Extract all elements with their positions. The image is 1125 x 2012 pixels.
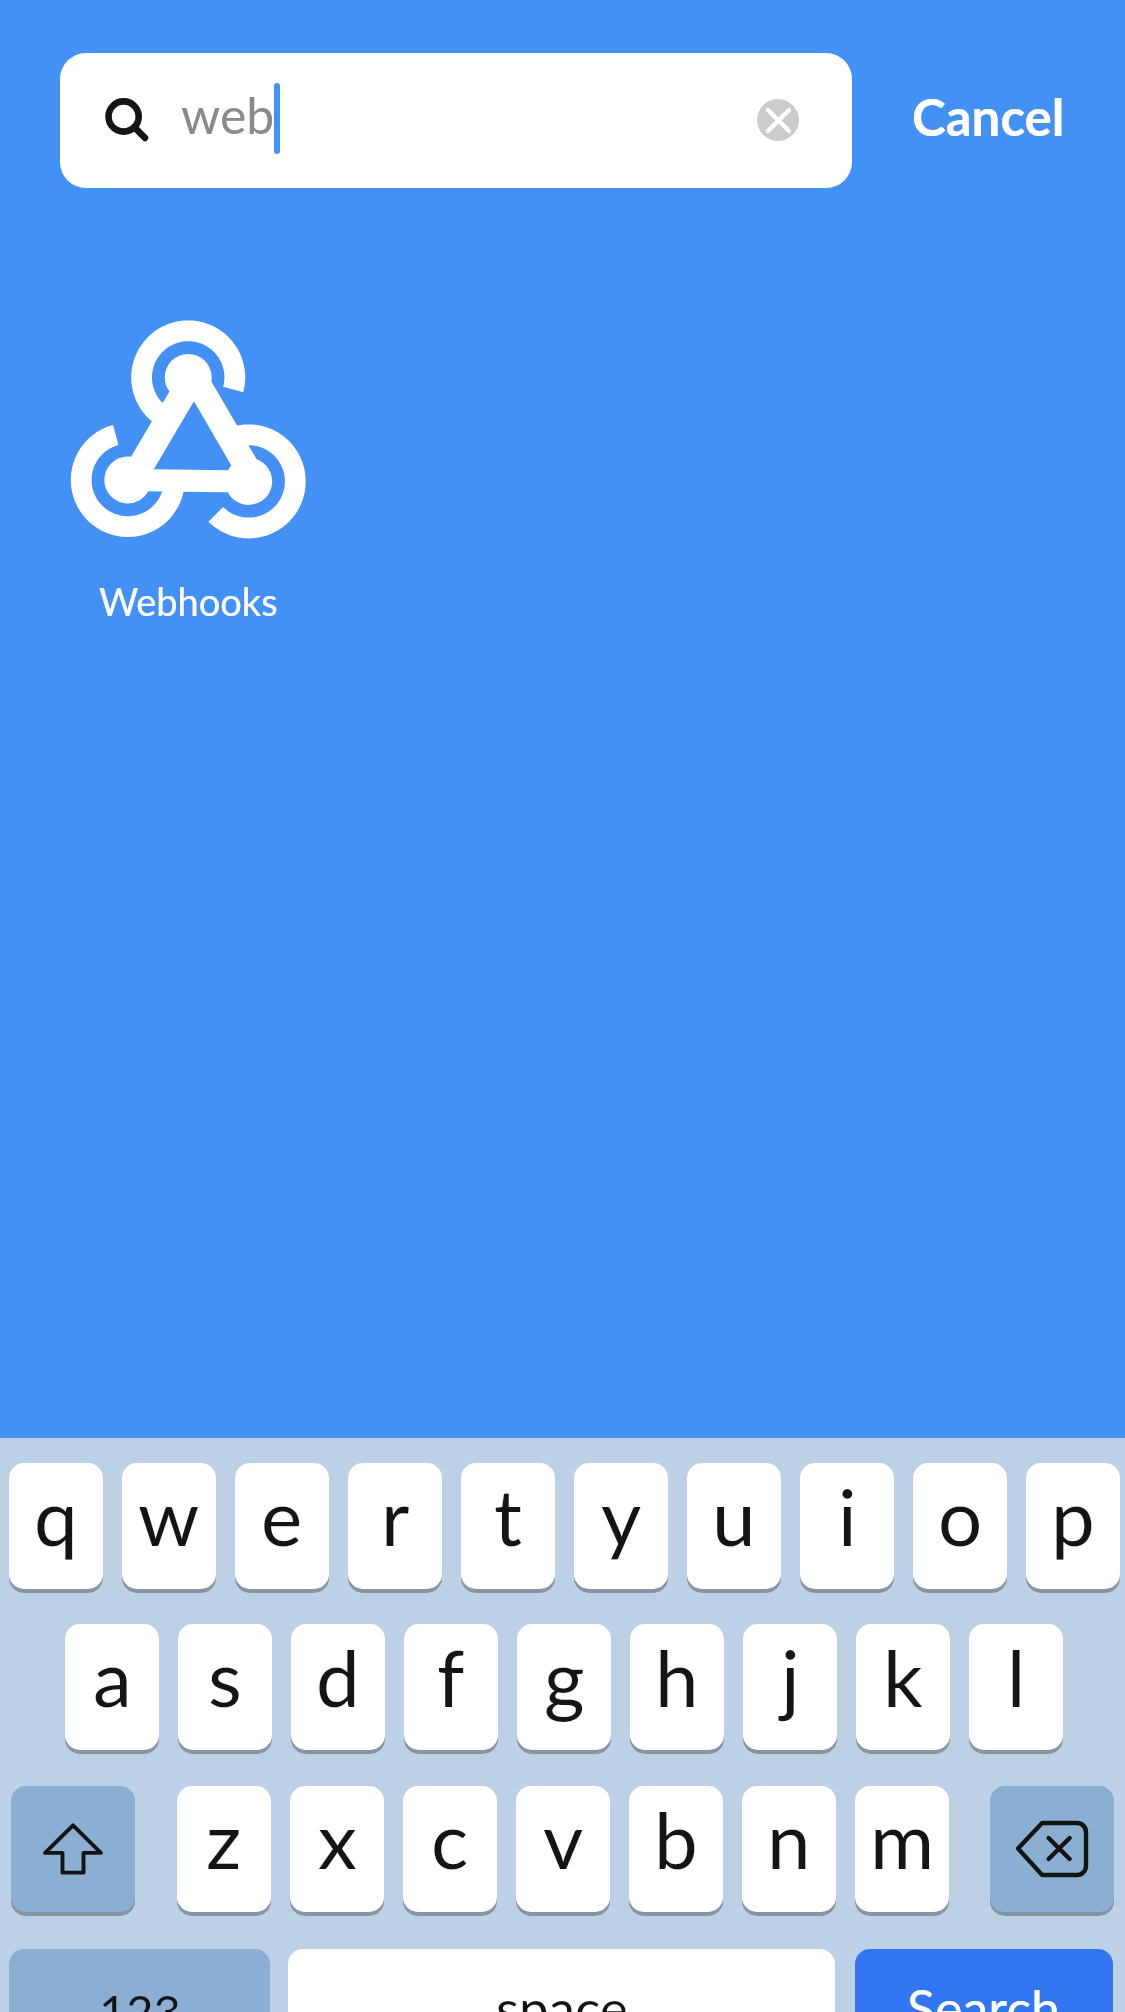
staticText: d <box>316 1630 360 1724</box>
button[interactable]: m <box>855 1786 949 1912</box>
button[interactable]: l <box>969 1624 1063 1750</box>
button[interactable]: web <box>60 53 852 188</box>
button[interactable]: Cancel <box>881 53 1096 188</box>
button[interactable]: e <box>235 1463 329 1589</box>
staticText: r <box>381 1469 410 1563</box>
staticText: b <box>654 1792 698 1886</box>
staticText: o <box>938 1469 983 1563</box>
staticText: j <box>781 1630 800 1724</box>
staticText: q <box>34 1469 78 1563</box>
button[interactable]: y <box>574 1463 668 1589</box>
button[interactable]: x <box>290 1786 384 1912</box>
button[interactable]: r <box>348 1463 442 1589</box>
button[interactable]: k <box>856 1624 950 1750</box>
button[interactable]: b <box>629 1786 723 1912</box>
staticText: g <box>544 1630 585 1724</box>
staticText: a <box>93 1630 132 1724</box>
staticText: Search <box>907 1977 1061 2012</box>
button[interactable]: c <box>403 1786 497 1912</box>
staticText: z <box>206 1792 242 1886</box>
button[interactable]: w <box>122 1463 216 1589</box>
button[interactable]: t <box>461 1463 555 1589</box>
button[interactable]: h <box>630 1624 724 1750</box>
button[interactable]: i <box>800 1463 894 1589</box>
button[interactable]: n <box>742 1786 836 1912</box>
staticText: p <box>1051 1469 1095 1563</box>
staticText: Cancel <box>912 86 1065 147</box>
button[interactable]: s <box>178 1624 272 1750</box>
staticText: c <box>431 1792 469 1886</box>
button[interactable]: q <box>9 1463 103 1589</box>
button[interactable]: space <box>288 1949 835 2012</box>
button[interactable]: g <box>517 1624 611 1750</box>
button[interactable]: z <box>177 1786 271 1912</box>
staticText: s <box>208 1630 242 1724</box>
staticText: f <box>437 1630 465 1724</box>
staticText: y <box>601 1469 642 1563</box>
staticText: w <box>138 1469 200 1563</box>
staticText: v <box>543 1792 584 1886</box>
staticText: i <box>838 1469 857 1563</box>
button[interactable]: Search <box>855 1949 1113 2012</box>
button[interactable]: Backspace <box>990 1786 1114 1912</box>
button[interactable]: Shift <box>11 1786 135 1912</box>
staticText: h <box>655 1630 699 1724</box>
staticText: x <box>318 1792 357 1886</box>
button[interactable]: v <box>516 1786 610 1912</box>
button[interactable]: f <box>404 1624 498 1750</box>
staticText: web <box>181 85 275 145</box>
button[interactable]: u <box>687 1463 781 1589</box>
staticText: Webhooks <box>99 578 278 624</box>
staticText: n <box>767 1792 811 1886</box>
button[interactable]: Clear search <box>757 99 799 141</box>
staticText: t <box>494 1469 522 1563</box>
button[interactable]: o <box>913 1463 1007 1589</box>
button[interactable]: Numbers <box>9 1949 270 2012</box>
staticText: m <box>870 1792 935 1886</box>
staticText: u <box>712 1469 756 1563</box>
staticText: k <box>883 1630 923 1724</box>
button[interactable]: d <box>291 1624 385 1750</box>
button[interactable]: p <box>1026 1463 1120 1589</box>
staticText: 123 <box>99 1983 181 2012</box>
button[interactable]: a <box>65 1624 159 1750</box>
staticText: space <box>496 1976 628 2012</box>
button[interactable]: j <box>743 1624 837 1750</box>
staticText: e <box>261 1469 303 1563</box>
staticText: l <box>1007 1630 1026 1724</box>
button[interactable]: Webhooks <box>71 319 305 624</box>
